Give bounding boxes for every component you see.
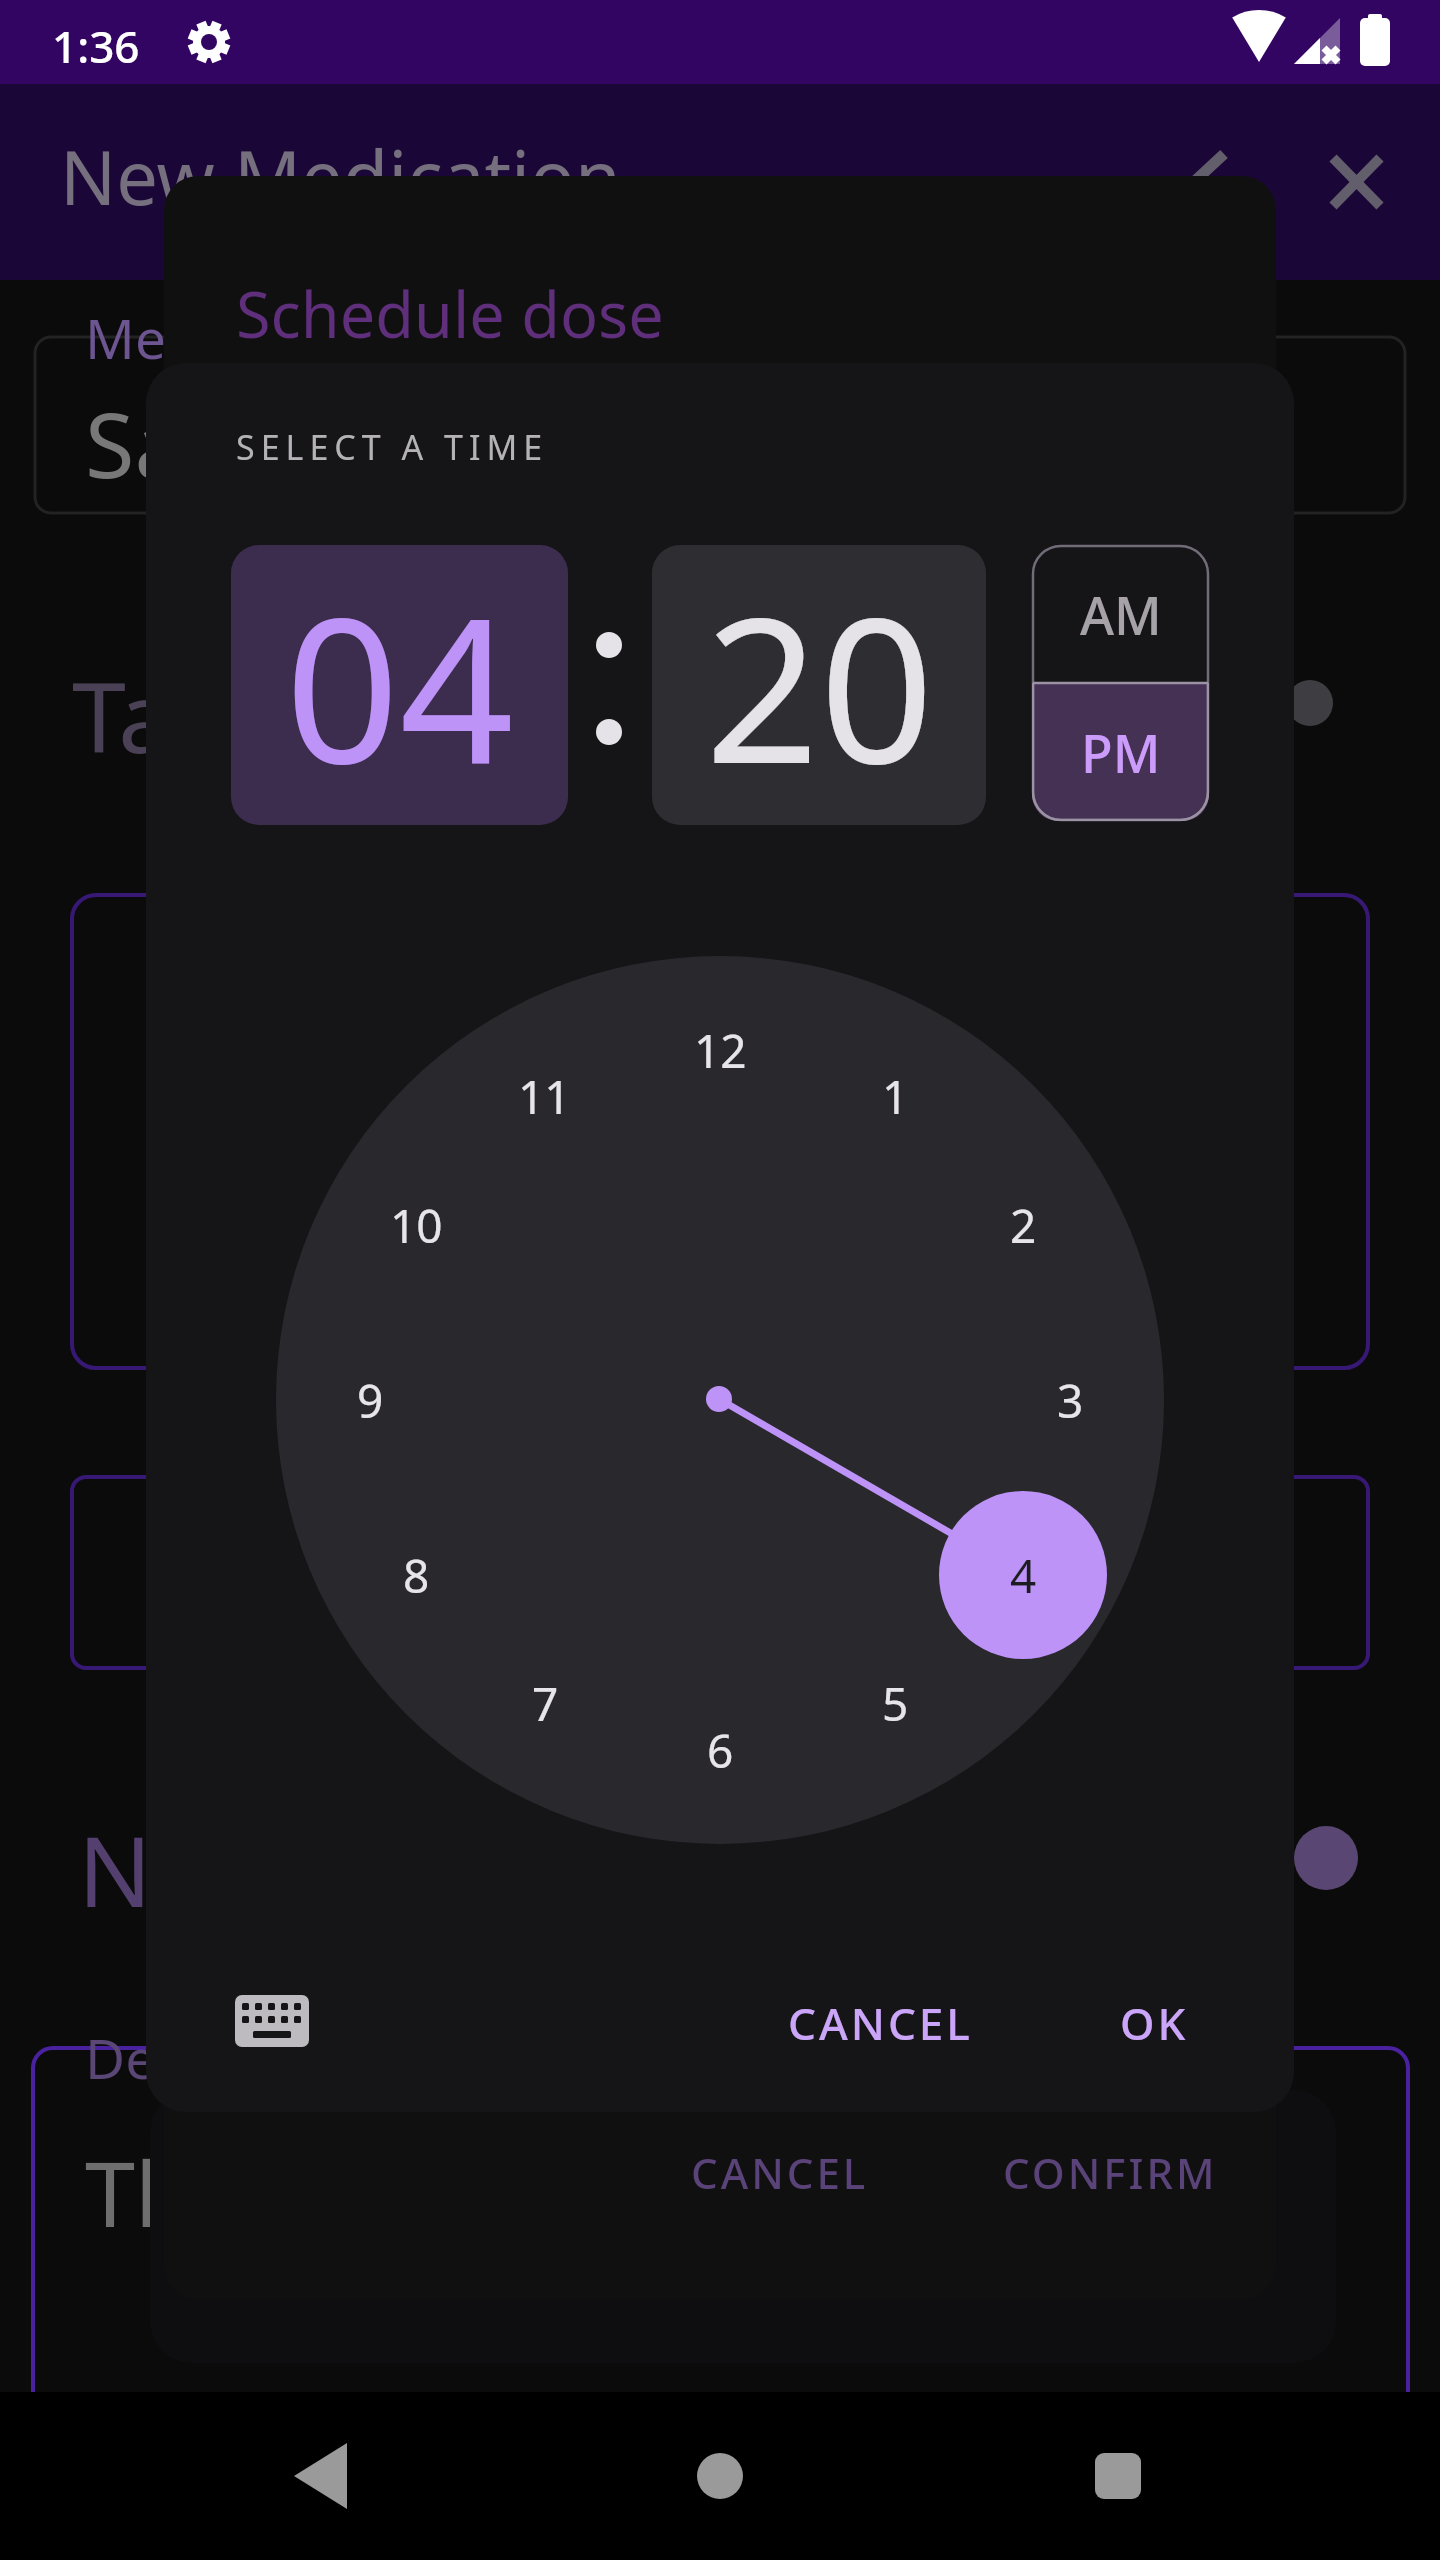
staticText: New Medication — [60, 126, 621, 227]
staticText: 8 — [403, 1544, 430, 1607]
staticText: OK — [1120, 1993, 1189, 2053]
button[interactable] — [226, 1983, 318, 2059]
staticText: De — [85, 2020, 157, 2095]
button[interactable] — [1322, 148, 1390, 216]
staticText: 1:36 — [52, 16, 140, 76]
staticText: CANCEL — [788, 1993, 973, 2053]
staticText: 6 — [707, 1719, 734, 1782]
button[interactable]: CONFIRM — [960, 2130, 1260, 2214]
staticText: Schedule dose — [236, 271, 664, 357]
staticText: CANCEL — [691, 2144, 869, 2201]
staticText: AM — [1080, 579, 1162, 650]
staticText: 3 — [1057, 1369, 1084, 1432]
staticText: SELECT A TIME — [236, 424, 549, 470]
button[interactable]: CANCEL — [760, 1981, 1000, 2065]
staticText: 11 — [518, 1065, 571, 1128]
staticText: 2 — [1010, 1194, 1037, 1257]
staticText: 5 — [882, 1672, 909, 1735]
button[interactable]: 20 — [652, 545, 986, 825]
button[interactable] — [685, 2441, 755, 2511]
button[interactable]: OK — [1074, 1981, 1234, 2065]
staticText: 04 — [285, 549, 514, 821]
staticText: PM — [1081, 717, 1161, 788]
staticText: Sa — [85, 382, 185, 505]
button[interactable]: PM — [1032, 683, 1209, 821]
staticText: 9 — [357, 1369, 384, 1432]
staticText: 4 — [1010, 1544, 1037, 1607]
staticText: CONFIRM — [1003, 2144, 1218, 2201]
staticText: Th — [85, 2131, 191, 2254]
staticText: 10 — [390, 1194, 443, 1257]
staticText: 7 — [532, 1672, 559, 1735]
button[interactable] — [1083, 2441, 1153, 2511]
staticText: 12 — [694, 1019, 747, 1082]
staticText: 1 — [882, 1065, 909, 1128]
button[interactable] — [285, 2441, 355, 2511]
button[interactable]: 04 — [231, 545, 568, 825]
staticText: 20 — [705, 549, 934, 821]
button[interactable]: CANCEL — [640, 2130, 920, 2214]
staticText: Ne — [78, 1803, 207, 1935]
staticText: Me — [85, 300, 166, 375]
staticText: Ta — [72, 649, 173, 781]
button[interactable]: AM — [1032, 545, 1209, 683]
